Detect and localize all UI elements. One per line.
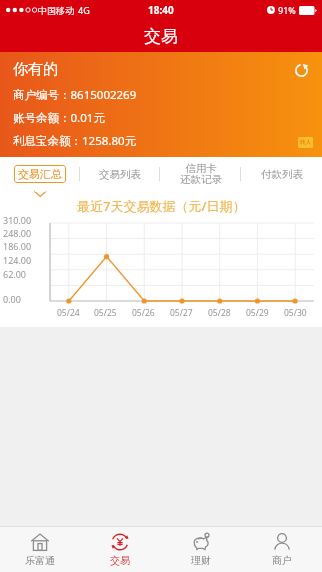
staticText: 乐富通 [25,554,55,567]
staticText: 186.00 [3,240,32,252]
staticText: 付款列表 [261,168,303,181]
staticText: 05/30 [284,307,307,319]
staticText: 91% [278,4,296,16]
staticText: 利息宝余额：1258.80元 [13,133,137,149]
staticText: 124.00 [3,254,32,266]
staticText: 05/24 [57,307,80,319]
button[interactable]: 信用卡 还款记录 [160,157,241,191]
staticText: 0.00 [3,293,21,305]
button[interactable]: 交易汇总 [0,157,80,191]
button[interactable]: 理财 [160,526,241,572]
staticText: 05/29 [246,307,269,319]
button[interactable]: 商户 [241,526,322,572]
staticText: 4G [78,4,90,16]
button[interactable]: 刷新 [290,59,312,81]
button[interactable]: 付款列表 [241,157,322,191]
button[interactable]: 利息宝详情 [298,137,313,148]
staticText: 中国移动 [38,5,74,16]
staticText: 62.00 [3,268,27,280]
button[interactable]: 交易 [80,526,160,572]
staticText: 05/27 [170,307,193,319]
staticText: 理财 [191,554,211,567]
staticText: 交易列表 [99,168,141,181]
staticText: 账号余额：0.01元 [13,110,105,126]
staticText: 信用卡 还款记录 [180,162,222,186]
button[interactable]: 乐富通 [0,526,80,572]
staticText: 248.00 [3,227,32,239]
staticText: 05/25 [94,307,117,319]
staticText: 18:40 [148,3,174,17]
staticText: 你有的 [13,60,58,79]
staticText: 交易汇总 [18,167,62,181]
staticText: 商户 [272,554,292,567]
staticText: 310.00 [3,214,32,226]
staticText: 商户编号：8615002269 [13,87,137,103]
staticText: 交易 [144,26,178,47]
staticText: 05/28 [208,307,231,319]
staticText: 转入 [300,139,311,146]
staticText: 最近7天交易数据（元/日期） [77,197,246,215]
staticText: 交易 [110,554,130,567]
staticText: 05/26 [132,307,155,319]
button[interactable]: 交易列表 [80,157,160,191]
